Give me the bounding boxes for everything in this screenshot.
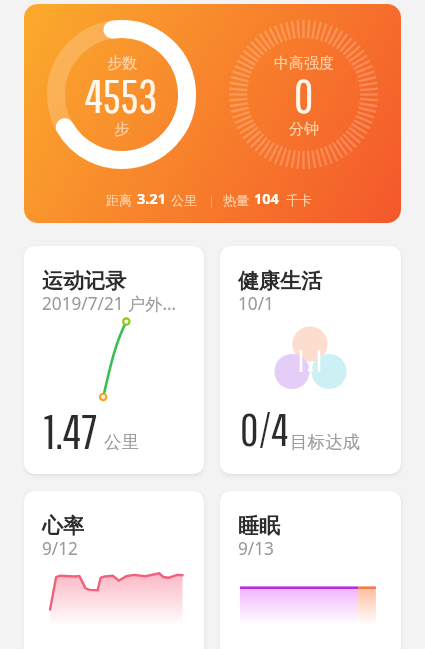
- staticText: 分钟: [289, 120, 319, 139]
- staticText: 运动记录: [42, 268, 126, 294]
- staticText: 公里: [104, 431, 139, 453]
- staticText: 3.21: [137, 188, 166, 208]
- button[interactable]: 心率: [24, 491, 204, 649]
- staticText: 心率: [42, 513, 84, 539]
- button[interactable]: 健康生活: [220, 246, 401, 474]
- button[interactable]: 睡眠: [220, 491, 401, 649]
- staticText: 目标达成: [290, 431, 360, 453]
- staticText: 4553: [85, 68, 158, 122]
- staticText: 0/4: [240, 403, 289, 455]
- staticText: 千卡: [286, 192, 312, 208]
- staticText: 健康生活: [238, 268, 322, 294]
- staticText: 睡眠: [238, 513, 280, 539]
- staticText: 距离: [106, 192, 132, 208]
- staticText: 0: [294, 68, 314, 122]
- button[interactable]: 运动记录: [24, 246, 204, 474]
- staticText: 中高强度: [274, 54, 334, 73]
- button[interactable]: 步数: [24, 4, 401, 223]
- staticText: 1.47: [44, 403, 98, 458]
- staticText: 10/1: [238, 292, 274, 315]
- staticText: 步数: [107, 54, 137, 73]
- staticText: 104: [254, 188, 279, 208]
- staticText: 步: [114, 120, 129, 139]
- staticText: 热量: [223, 192, 249, 208]
- staticText: 9/12: [42, 537, 78, 560]
- staticText: 2019/7/21 户外…: [42, 292, 177, 315]
- staticText: 9/13: [238, 537, 274, 560]
- staticText: 公里: [171, 192, 197, 208]
